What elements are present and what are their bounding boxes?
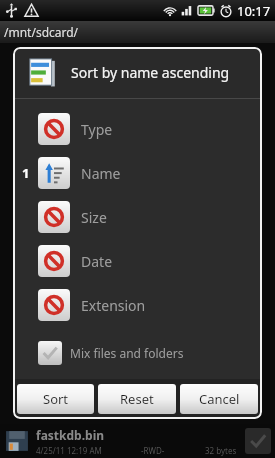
staticText: -RWD-: [141, 445, 165, 456]
button[interactable]: Cancel: [180, 384, 258, 414]
staticText: 32 bytes: [205, 445, 237, 456]
staticText: 1: [22, 164, 30, 182]
button[interactable]: Date: [13, 239, 262, 283]
button[interactable]: Type: [13, 107, 262, 151]
staticText: 10:17: [237, 2, 271, 20]
staticText: Mix files and folders: [70, 345, 184, 361]
staticText: Name: [81, 164, 121, 183]
staticText: Date: [81, 252, 113, 271]
staticText: fastkdb.bin: [36, 427, 105, 443]
button[interactable]: Size: [13, 195, 262, 239]
staticText: /mnt/sdcard/: [4, 24, 79, 40]
staticText: Reset: [120, 390, 154, 408]
button[interactable]: Reset: [98, 384, 176, 414]
button[interactable]: Extension: [13, 283, 262, 327]
staticText: Cancel: [199, 390, 240, 408]
staticText: Size: [81, 208, 107, 227]
staticText: 4/25/11 12:19 AM: [36, 445, 102, 456]
staticText: Type: [81, 120, 113, 139]
staticText: Sort by name ascending: [71, 63, 230, 82]
button[interactable]: 1: [13, 151, 262, 195]
button[interactable]: Mix files and folders: [13, 335, 262, 371]
staticText: Extension: [81, 296, 146, 315]
button[interactable]: Sort: [17, 384, 94, 414]
staticText: Sort: [43, 390, 69, 408]
